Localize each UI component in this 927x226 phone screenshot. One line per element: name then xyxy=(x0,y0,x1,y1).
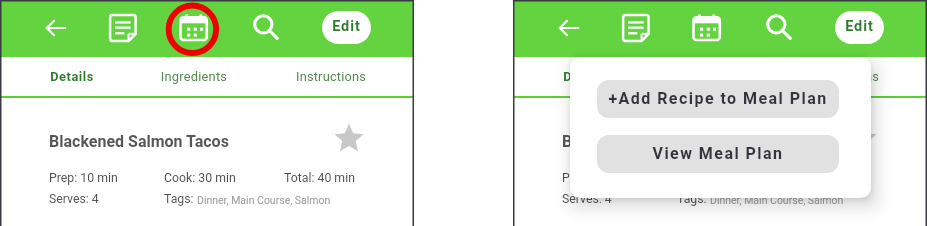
staticText: Blackened Salmon Tacos xyxy=(49,132,229,151)
button[interactable]: Search xyxy=(755,4,803,52)
staticText: Prep: 10 min xyxy=(49,171,118,185)
staticText: Ingredients xyxy=(647,69,767,84)
staticText: +Add Recipe to Meal Plan xyxy=(597,89,839,108)
staticText: Dinner, Main Course, Salmon xyxy=(197,194,331,206)
button[interactable]: View Meal Plan xyxy=(597,135,839,173)
button[interactable] xyxy=(276,57,414,97)
staticText: Total: 40 min xyxy=(284,171,355,185)
button[interactable] xyxy=(138,57,276,97)
staticText: Serves: 4 xyxy=(49,192,99,206)
button[interactable]: Edit xyxy=(322,11,371,44)
button[interactable]: Meal plan calendar xyxy=(170,4,218,52)
button[interactable] xyxy=(0,57,138,97)
staticText: Tags: xyxy=(164,192,194,206)
button[interactable] xyxy=(651,57,789,97)
staticText: Ingredients xyxy=(134,69,254,84)
staticText: Tags: xyxy=(677,192,707,206)
staticText: Blackened Salmon Tacos xyxy=(562,132,742,151)
button[interactable] xyxy=(789,57,927,97)
staticText: Instructions xyxy=(784,69,904,84)
staticText: Total: 40 min xyxy=(797,171,868,185)
staticText: Cook: 30 min xyxy=(677,171,749,185)
staticText: Details xyxy=(12,69,132,84)
button[interactable]: Back xyxy=(32,4,80,52)
staticText: Details xyxy=(525,69,645,84)
button[interactable] xyxy=(513,57,651,97)
staticText: View Meal Plan xyxy=(597,144,839,163)
button[interactable]: Meal plan calendar xyxy=(683,4,731,52)
staticText: Dinner, Main Course, Salmon xyxy=(710,194,844,206)
staticText: Edit xyxy=(835,18,884,35)
staticText: Cook: 30 min xyxy=(164,171,236,185)
staticText: Instructions xyxy=(271,69,391,84)
staticText: Serves: 4 xyxy=(562,192,612,206)
button[interactable]: Search xyxy=(242,4,290,52)
button[interactable]: Edit xyxy=(835,11,884,44)
button[interactable]: +Add Recipe to Meal Plan xyxy=(597,80,839,118)
staticText: Edit xyxy=(322,18,371,35)
button[interactable]: Notes xyxy=(99,4,147,52)
button[interactable]: Back xyxy=(545,4,593,52)
staticText: Prep: 10 min xyxy=(562,171,631,185)
button[interactable]: Notes xyxy=(612,4,660,52)
